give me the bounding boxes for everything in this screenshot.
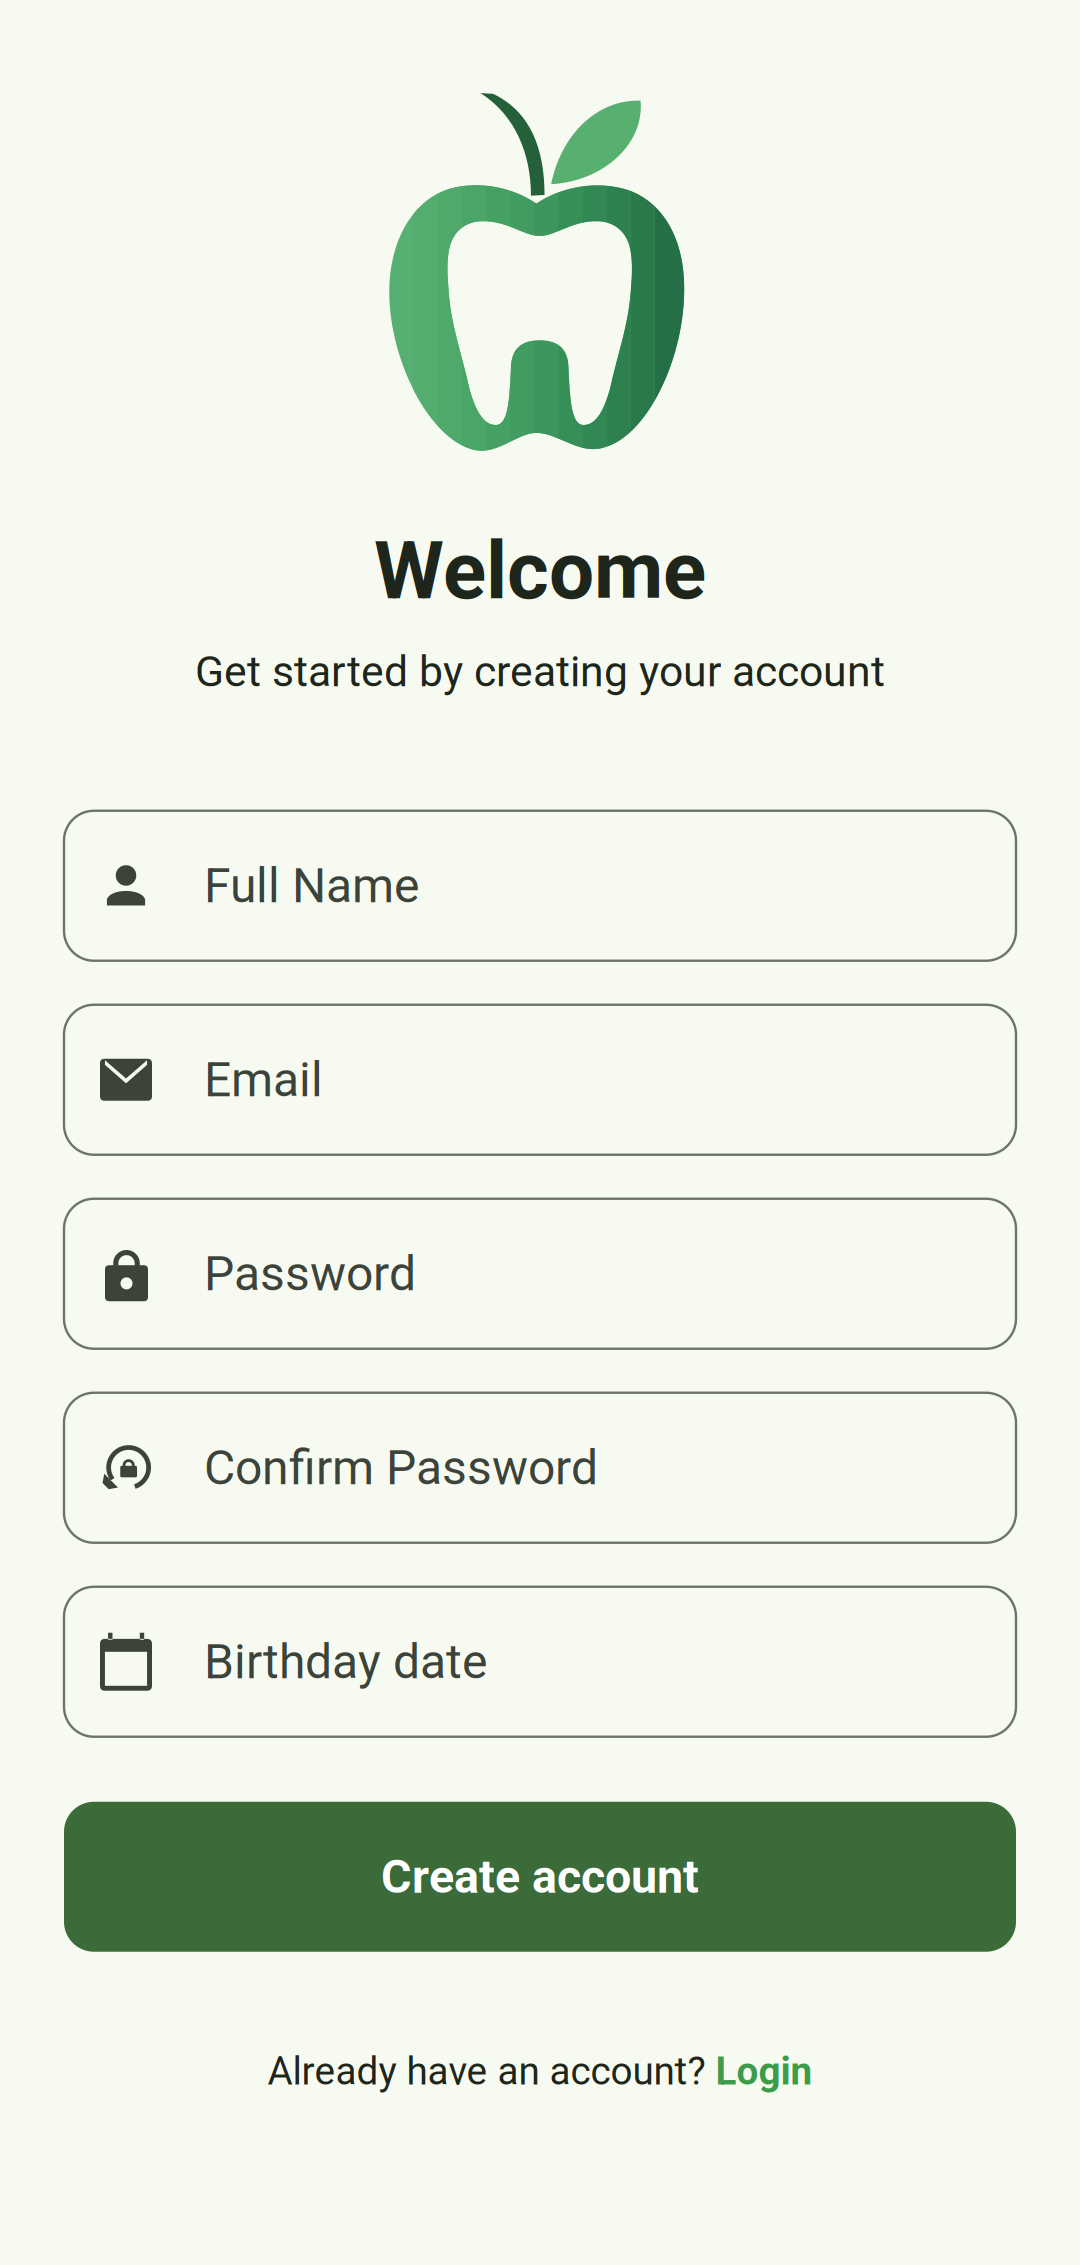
button[interactable]: Already have an account? [267,2049,812,2094]
staticText: Login [715,2049,812,2094]
button[interactable]: Confirm Password [64,1393,1016,1543]
staticText: Email [204,1052,323,1108]
staticText: Birthday date [204,1634,487,1690]
staticText: Get started by creating your account [195,647,885,697]
button[interactable]: Create account [64,1802,1016,1952]
staticText: Confirm Password [204,1440,598,1496]
staticText: Welcome [374,524,706,618]
staticText: Full Name [204,858,419,914]
button[interactable]: Email [64,1005,1016,1155]
staticText: Create account [381,1849,699,1904]
staticText: Already have an account? [267,2049,715,2094]
button[interactable]: Full Name [64,811,1016,961]
button[interactable]: Password [64,1199,1016,1349]
staticText: Password [204,1246,416,1302]
button[interactable]: Birthday date [64,1587,1016,1737]
